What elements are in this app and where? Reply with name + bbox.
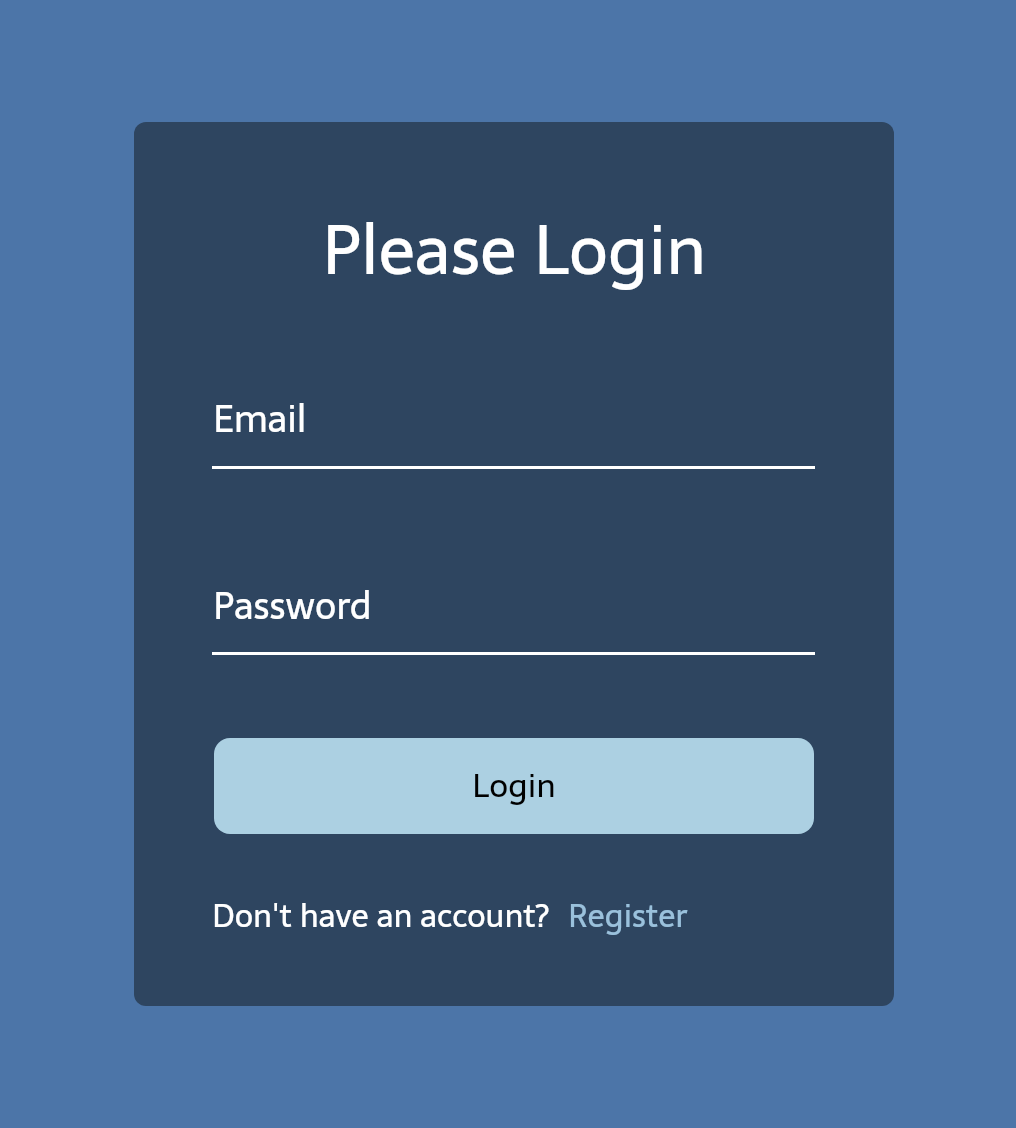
button[interactable]	[214, 738, 814, 834]
staticText: Don't have an account?	[212, 890, 549, 942]
staticText: Email	[213, 389, 307, 449]
button[interactable]: Register	[568, 890, 688, 942]
staticText: Password	[213, 576, 372, 636]
staticText: Please Login	[322, 194, 707, 305]
staticText: Login	[472, 758, 556, 812]
